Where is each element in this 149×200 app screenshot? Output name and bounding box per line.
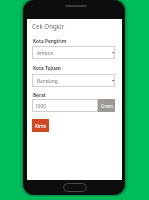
button[interactable]: 1000 (32, 99, 98, 112)
staticText: Cek Ongkir (32, 22, 65, 30)
button[interactable]: Kirim (32, 119, 49, 132)
button[interactable]: Home (63, 183, 87, 192)
staticText: Berat (33, 92, 46, 98)
staticText: Ambon (37, 50, 54, 57)
staticText: Bandung (37, 78, 58, 85)
staticText: 1000 (35, 103, 46, 110)
button[interactable]: Bandung (32, 74, 115, 87)
staticText: Kota Tujuan (33, 65, 61, 71)
staticText: Gram (101, 103, 113, 109)
staticText: Kirim (35, 123, 47, 129)
staticText: Kota Pengirim (33, 38, 67, 44)
button[interactable]: Ambon (32, 46, 115, 59)
button[interactable]: Gram (98, 99, 115, 112)
